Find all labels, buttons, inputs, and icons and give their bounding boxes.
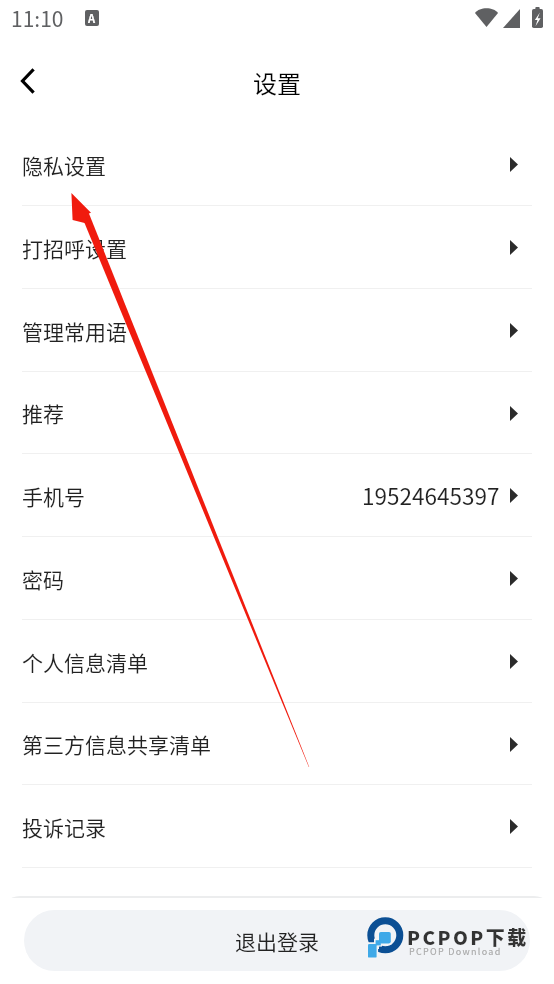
staticText: 19524645397 — [362, 479, 500, 512]
staticText: 11:10 — [11, 3, 64, 33]
button[interactable]: 退出登录 — [24, 910, 530, 971]
staticText: 退出登录 — [235, 926, 319, 956]
button[interactable]: Back — [6, 59, 49, 102]
staticText: 手机号 — [22, 481, 85, 511]
staticText: PCPOP Download — [409, 945, 502, 958]
button[interactable]: 个人信息清单 — [0, 620, 554, 703]
staticText: PCPOP下载 — [407, 923, 529, 951]
button[interactable]: 推荐 — [0, 372, 554, 454]
staticText: 隐私设置 — [22, 150, 106, 180]
staticText: 第三方信息共享清单 — [22, 729, 211, 759]
staticText: 个人信息清单 — [22, 647, 148, 677]
staticText: 打招呼设置 — [22, 233, 127, 263]
staticText: 投诉记录 — [22, 812, 106, 842]
staticText: A — [88, 10, 96, 26]
button[interactable]: 隐私设置 — [0, 123, 554, 206]
staticText: 设置 — [253, 65, 301, 100]
button[interactable]: 第三方信息共享清单 — [0, 703, 554, 785]
button[interactable]: 打招呼设置 — [0, 206, 554, 289]
staticText: 推荐 — [22, 398, 64, 428]
button[interactable]: 投诉记录 — [0, 785, 554, 868]
button[interactable]: 手机号 — [0, 454, 554, 537]
button[interactable]: 密码 — [0, 537, 554, 620]
staticText: 密码 — [22, 564, 64, 594]
button[interactable]: 管理常用语 — [0, 289, 554, 372]
staticText: 管理常用语 — [22, 316, 127, 346]
